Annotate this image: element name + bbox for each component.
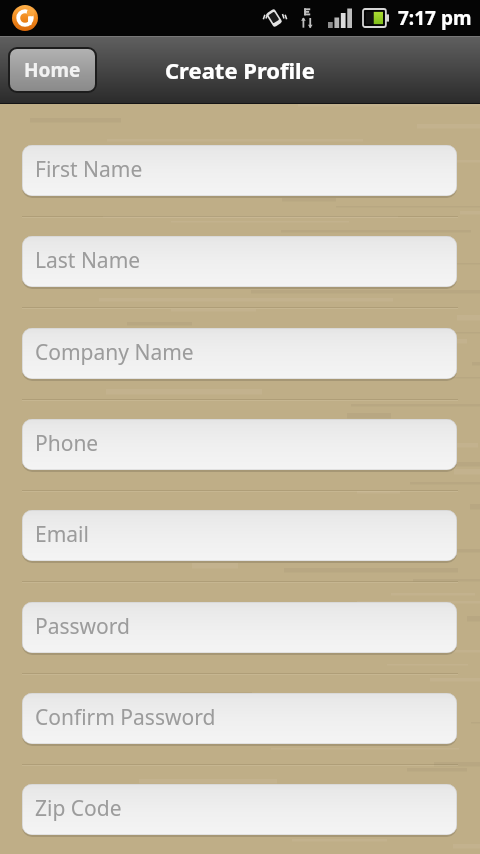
button[interactable]: Company Name	[22, 328, 457, 379]
button[interactable]: Home	[10, 49, 95, 91]
staticText: First Name	[35, 155, 143, 184]
button[interactable]: Confirm Password	[22, 693, 457, 744]
staticText: Zip Code	[35, 794, 122, 823]
staticText: Email	[35, 520, 89, 549]
button[interactable]: First Name	[22, 145, 457, 196]
button[interactable]: Last Name	[22, 236, 457, 287]
staticText: Create Profile	[165, 55, 315, 85]
staticText: Last Name	[35, 246, 141, 275]
staticText: Password	[35, 612, 130, 641]
button[interactable]: Password	[22, 602, 457, 653]
staticText: Confirm Password	[35, 703, 216, 732]
button[interactable]: Phone	[22, 419, 457, 470]
staticText: Phone	[35, 429, 99, 458]
staticText: Company Name	[35, 338, 194, 367]
staticText: 7:17 pm	[398, 5, 472, 31]
button[interactable]: Email	[22, 510, 457, 561]
staticText: Home	[24, 57, 81, 83]
button[interactable]: Zip Code	[22, 784, 457, 835]
